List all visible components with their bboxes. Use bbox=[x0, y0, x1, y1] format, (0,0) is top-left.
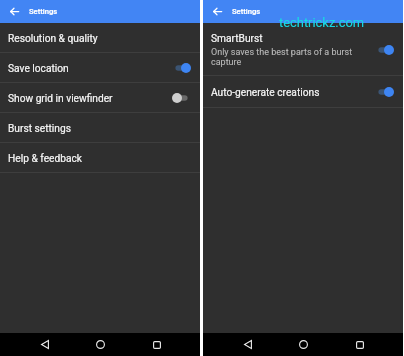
button[interactable]: Back bbox=[32, 333, 58, 356]
button[interactable]: Show grid in viewfinder bbox=[0, 83, 200, 113]
button[interactable]: Recents bbox=[347, 333, 373, 356]
button[interactable]: Help & feedback bbox=[0, 143, 200, 173]
button[interactable]: SmartBurst bbox=[203, 23, 403, 76]
button[interactable]: Resolution & quality bbox=[0, 23, 200, 53]
staticText: Help & feedback bbox=[8, 153, 191, 165]
button[interactable]: Home bbox=[87, 333, 113, 356]
staticText: Burst settings bbox=[8, 123, 191, 135]
button[interactable]: Back bbox=[235, 333, 261, 356]
button[interactable]: Save location bbox=[0, 53, 200, 83]
button[interactable]: Recents bbox=[144, 333, 170, 356]
button[interactable]: Back bbox=[0, 0, 28, 23]
staticText: Settings bbox=[29, 7, 58, 16]
staticText: techtrickz.com bbox=[279, 15, 365, 30]
staticText: Auto-generate creations bbox=[211, 87, 375, 99]
staticText: Only saves the best parts of a burst cap… bbox=[211, 47, 375, 67]
staticText: Settings bbox=[232, 7, 261, 16]
staticText: Save location bbox=[8, 63, 172, 75]
button[interactable]: Home bbox=[290, 333, 316, 356]
staticText: SmartBurst bbox=[211, 33, 263, 45]
button[interactable]: Burst settings bbox=[0, 113, 200, 143]
button[interactable]: Auto-generate creations bbox=[203, 76, 403, 108]
button[interactable]: Back bbox=[203, 0, 231, 23]
staticText: Resolution & quality bbox=[8, 33, 191, 45]
staticText: Show grid in viewfinder bbox=[8, 93, 172, 105]
